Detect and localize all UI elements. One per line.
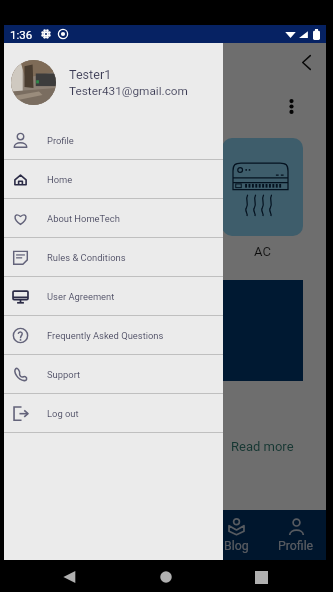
staticText: User Agreement [47,291,115,302]
button[interactable]: More options [280,95,302,117]
staticText: Log out [47,408,79,419]
button[interactable]: Back [58,565,80,587]
button[interactable]: About HomeTech [4,199,223,237]
button[interactable]: Profile [266,510,326,560]
button[interactable]: AC [222,138,303,236]
staticText: Frequently Asked Questions [47,330,164,341]
staticText: Tester431@gmail.com [69,84,188,98]
staticText: Tester1 [69,67,112,82]
staticText: About HomeTech [47,213,120,224]
staticText: Profile [278,539,314,553]
button[interactable]: Frequently Asked Questions [4,316,223,354]
button[interactable]: Home [4,160,223,198]
staticText: Home [47,174,73,185]
button[interactable]: Support [4,355,223,393]
button[interactable]: Back [293,49,319,75]
button[interactable]: Tester1 [11,43,223,121]
button[interactable]: User Agreement [4,277,223,315]
button[interactable]: Profile [4,121,223,159]
staticText: Blog [224,539,249,553]
staticText: Profile [47,135,74,146]
staticText: Rules & Conditions [47,252,126,263]
button[interactable]: Read more [231,439,294,454]
button[interactable]: Recent apps [250,565,272,587]
button[interactable]: Rules & Conditions [4,238,223,276]
button[interactable]: Home [155,565,177,587]
staticText: 1:36 [10,28,33,41]
staticText: AC [254,244,271,259]
button[interactable]: Blog [206,510,266,560]
staticText: Support [47,369,81,380]
button[interactable]: Log out [4,394,223,432]
